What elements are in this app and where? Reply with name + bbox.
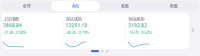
staticText: 3192.82 (128, 22, 147, 28)
button[interactable]: 深证成指 (64, 13, 126, 49)
staticText: 全球 (22, 3, 30, 9)
button[interactable]: 上证指数 (1, 13, 63, 49)
button[interactable]: 美股 (149, 1, 198, 11)
staticText: -0.94% (15, 29, 27, 35)
staticText: -30.26 (66, 29, 76, 35)
button[interactable]: 港股 (100, 1, 149, 11)
staticText: -31.48 (3, 29, 13, 35)
staticText: 创业板指 (128, 16, 144, 22)
staticText: 13251.18 (66, 22, 88, 28)
staticText: -16.78 (128, 29, 138, 35)
staticText: -0.52% (140, 29, 152, 35)
button[interactable]: 创业板指 (126, 13, 188, 49)
staticText: 3868.84 (3, 22, 22, 28)
staticText: 美股 (169, 3, 177, 9)
staticText: A股 (72, 3, 79, 9)
staticText: 上证指数 (3, 16, 19, 22)
staticText: 深证成指 (66, 16, 82, 22)
button[interactable]: 全球 (2, 1, 51, 11)
staticText: -0.19% (78, 29, 90, 35)
button[interactable]: More indices (189, 25, 197, 35)
button[interactable]: A股 (51, 1, 100, 11)
staticText: 港股 (120, 3, 128, 9)
